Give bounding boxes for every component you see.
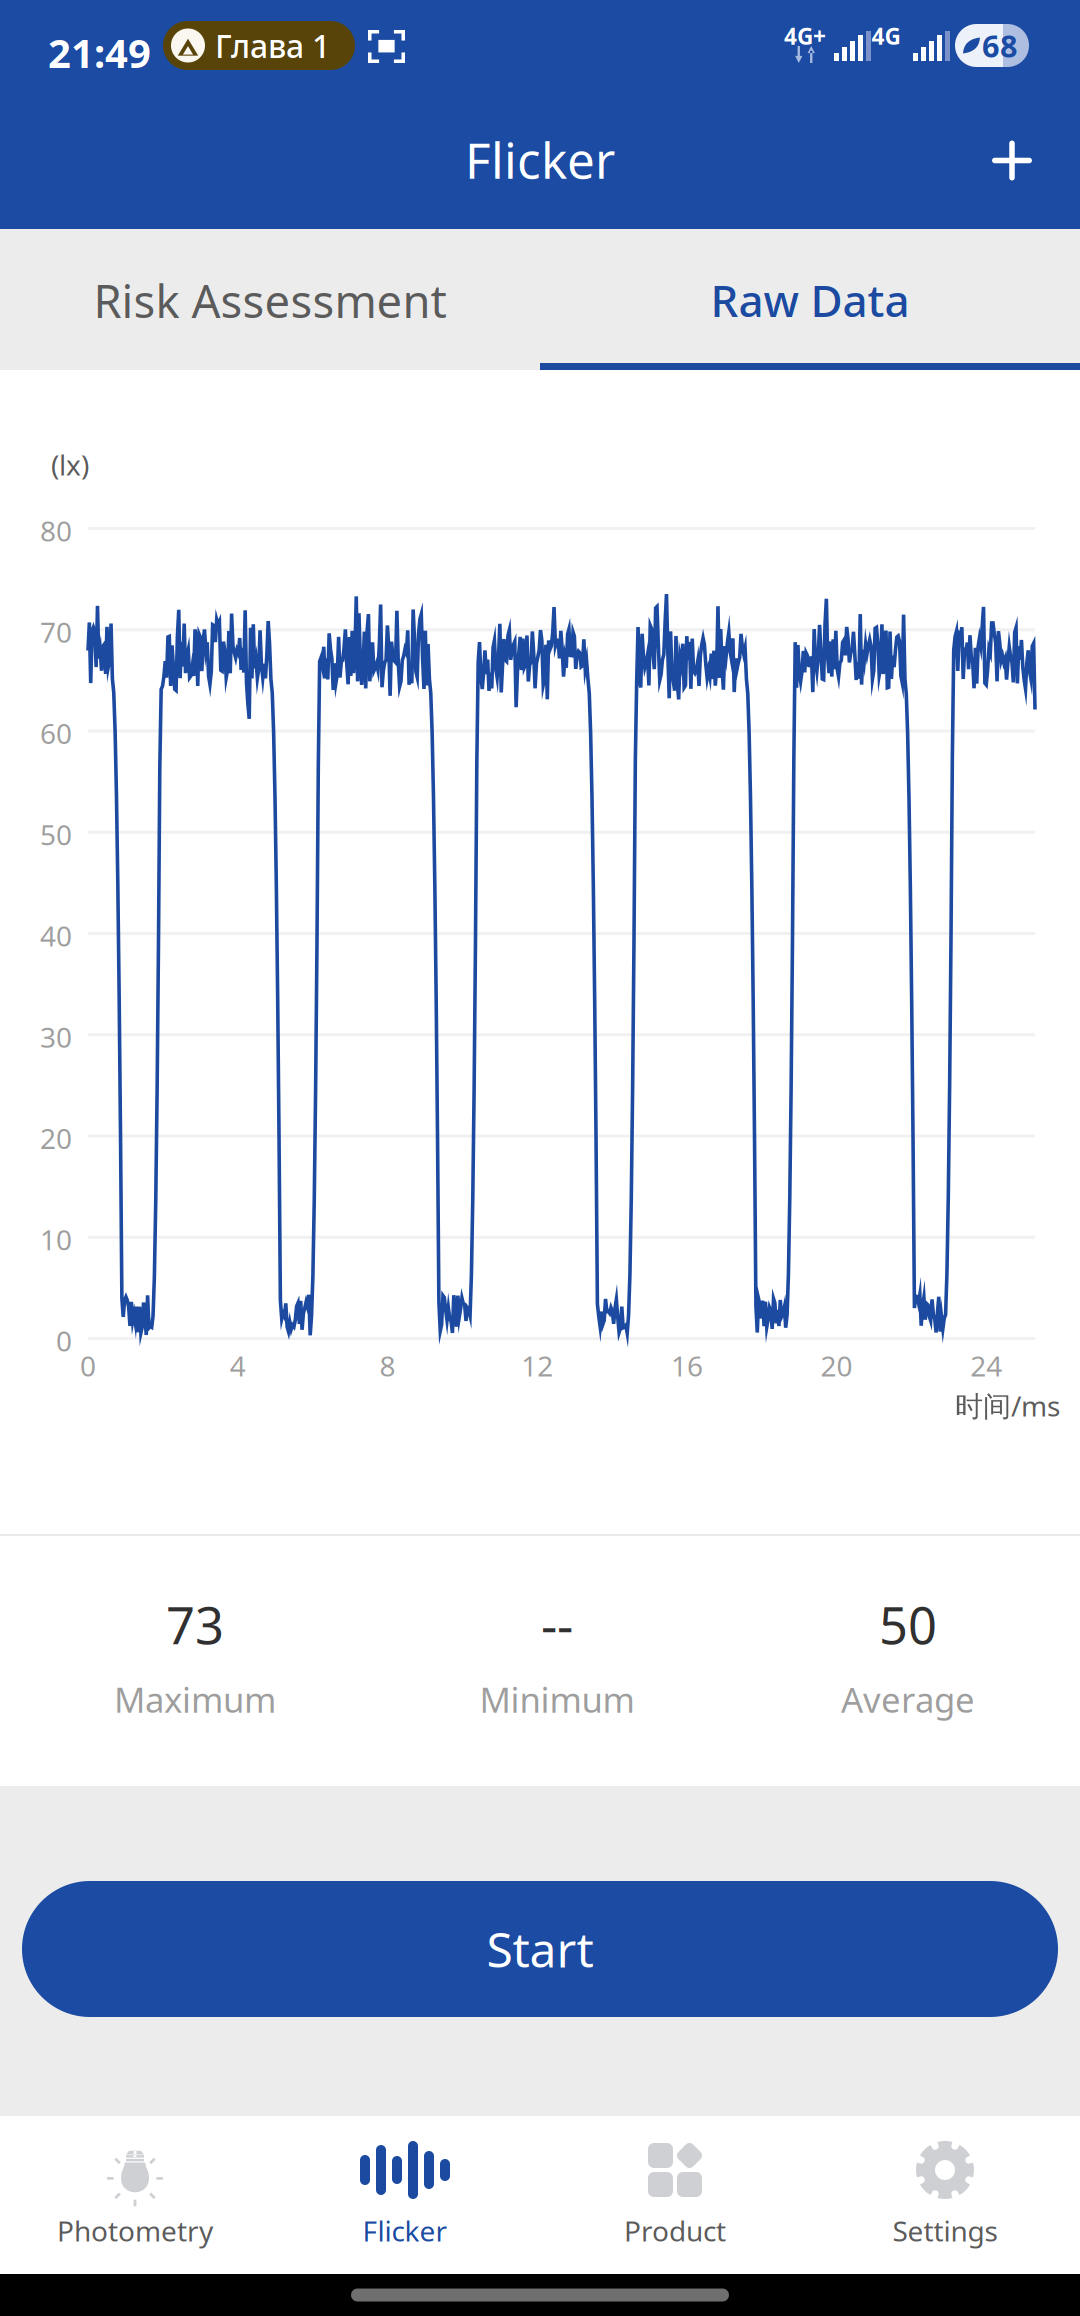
staticText: Flicker [465, 127, 615, 192]
staticText: 21:49 [48, 26, 151, 79]
staticText: Flicker [362, 2212, 447, 2249]
staticText: 8 [379, 1347, 395, 1384]
staticText: 24 [970, 1347, 1002, 1384]
staticText: -- [541, 1591, 573, 1658]
staticText: 50 [879, 1591, 937, 1658]
staticText: Average [841, 1676, 975, 1722]
staticText: Settings [892, 2212, 997, 2249]
staticText: 12 [521, 1347, 553, 1384]
staticText: 70 [40, 613, 72, 650]
button[interactable]: Photometry [0, 2116, 270, 2274]
staticText: 40 [40, 917, 72, 954]
staticText: 73 [166, 1591, 224, 1658]
button[interactable]: Raw Data [540, 229, 1080, 370]
button[interactable]: Product [540, 2116, 810, 2274]
staticText: 30 [40, 1018, 72, 1055]
staticText: Minimum [479, 1676, 634, 1722]
staticText: Start [486, 1917, 593, 1981]
staticText: 0 [56, 1322, 72, 1359]
staticText: 20 [40, 1119, 72, 1157]
button[interactable]: Risk Assessment [0, 229, 540, 370]
staticText: 时间/ms [955, 1387, 1060, 1424]
staticText: 50 [40, 816, 72, 853]
staticText: 20 [821, 1347, 853, 1384]
staticText: 4G [871, 21, 900, 51]
staticText: 68 [982, 25, 1018, 66]
staticText: Product [624, 2212, 726, 2249]
staticText: Глава 1 [215, 24, 330, 67]
staticText: (lx) [51, 446, 89, 483]
staticText: 4G+ [784, 21, 826, 51]
staticText: 10 [40, 1221, 72, 1258]
staticText: 80 [40, 512, 72, 549]
staticText: Raw Data [710, 271, 909, 329]
button[interactable]: Add [944, 92, 1080, 229]
button[interactable]: Start [22, 1881, 1058, 2017]
staticText: Risk Assessment [93, 270, 446, 331]
staticText: 16 [671, 1347, 703, 1384]
staticText: Photometry [57, 2212, 213, 2249]
button[interactable]: Flicker [270, 2116, 540, 2274]
button[interactable]: Settings [810, 2116, 1080, 2274]
staticText: 60 [40, 714, 72, 752]
staticText: 4 [230, 1347, 246, 1384]
staticText: 0 [80, 1347, 96, 1384]
staticText: Maximum [114, 1676, 276, 1722]
